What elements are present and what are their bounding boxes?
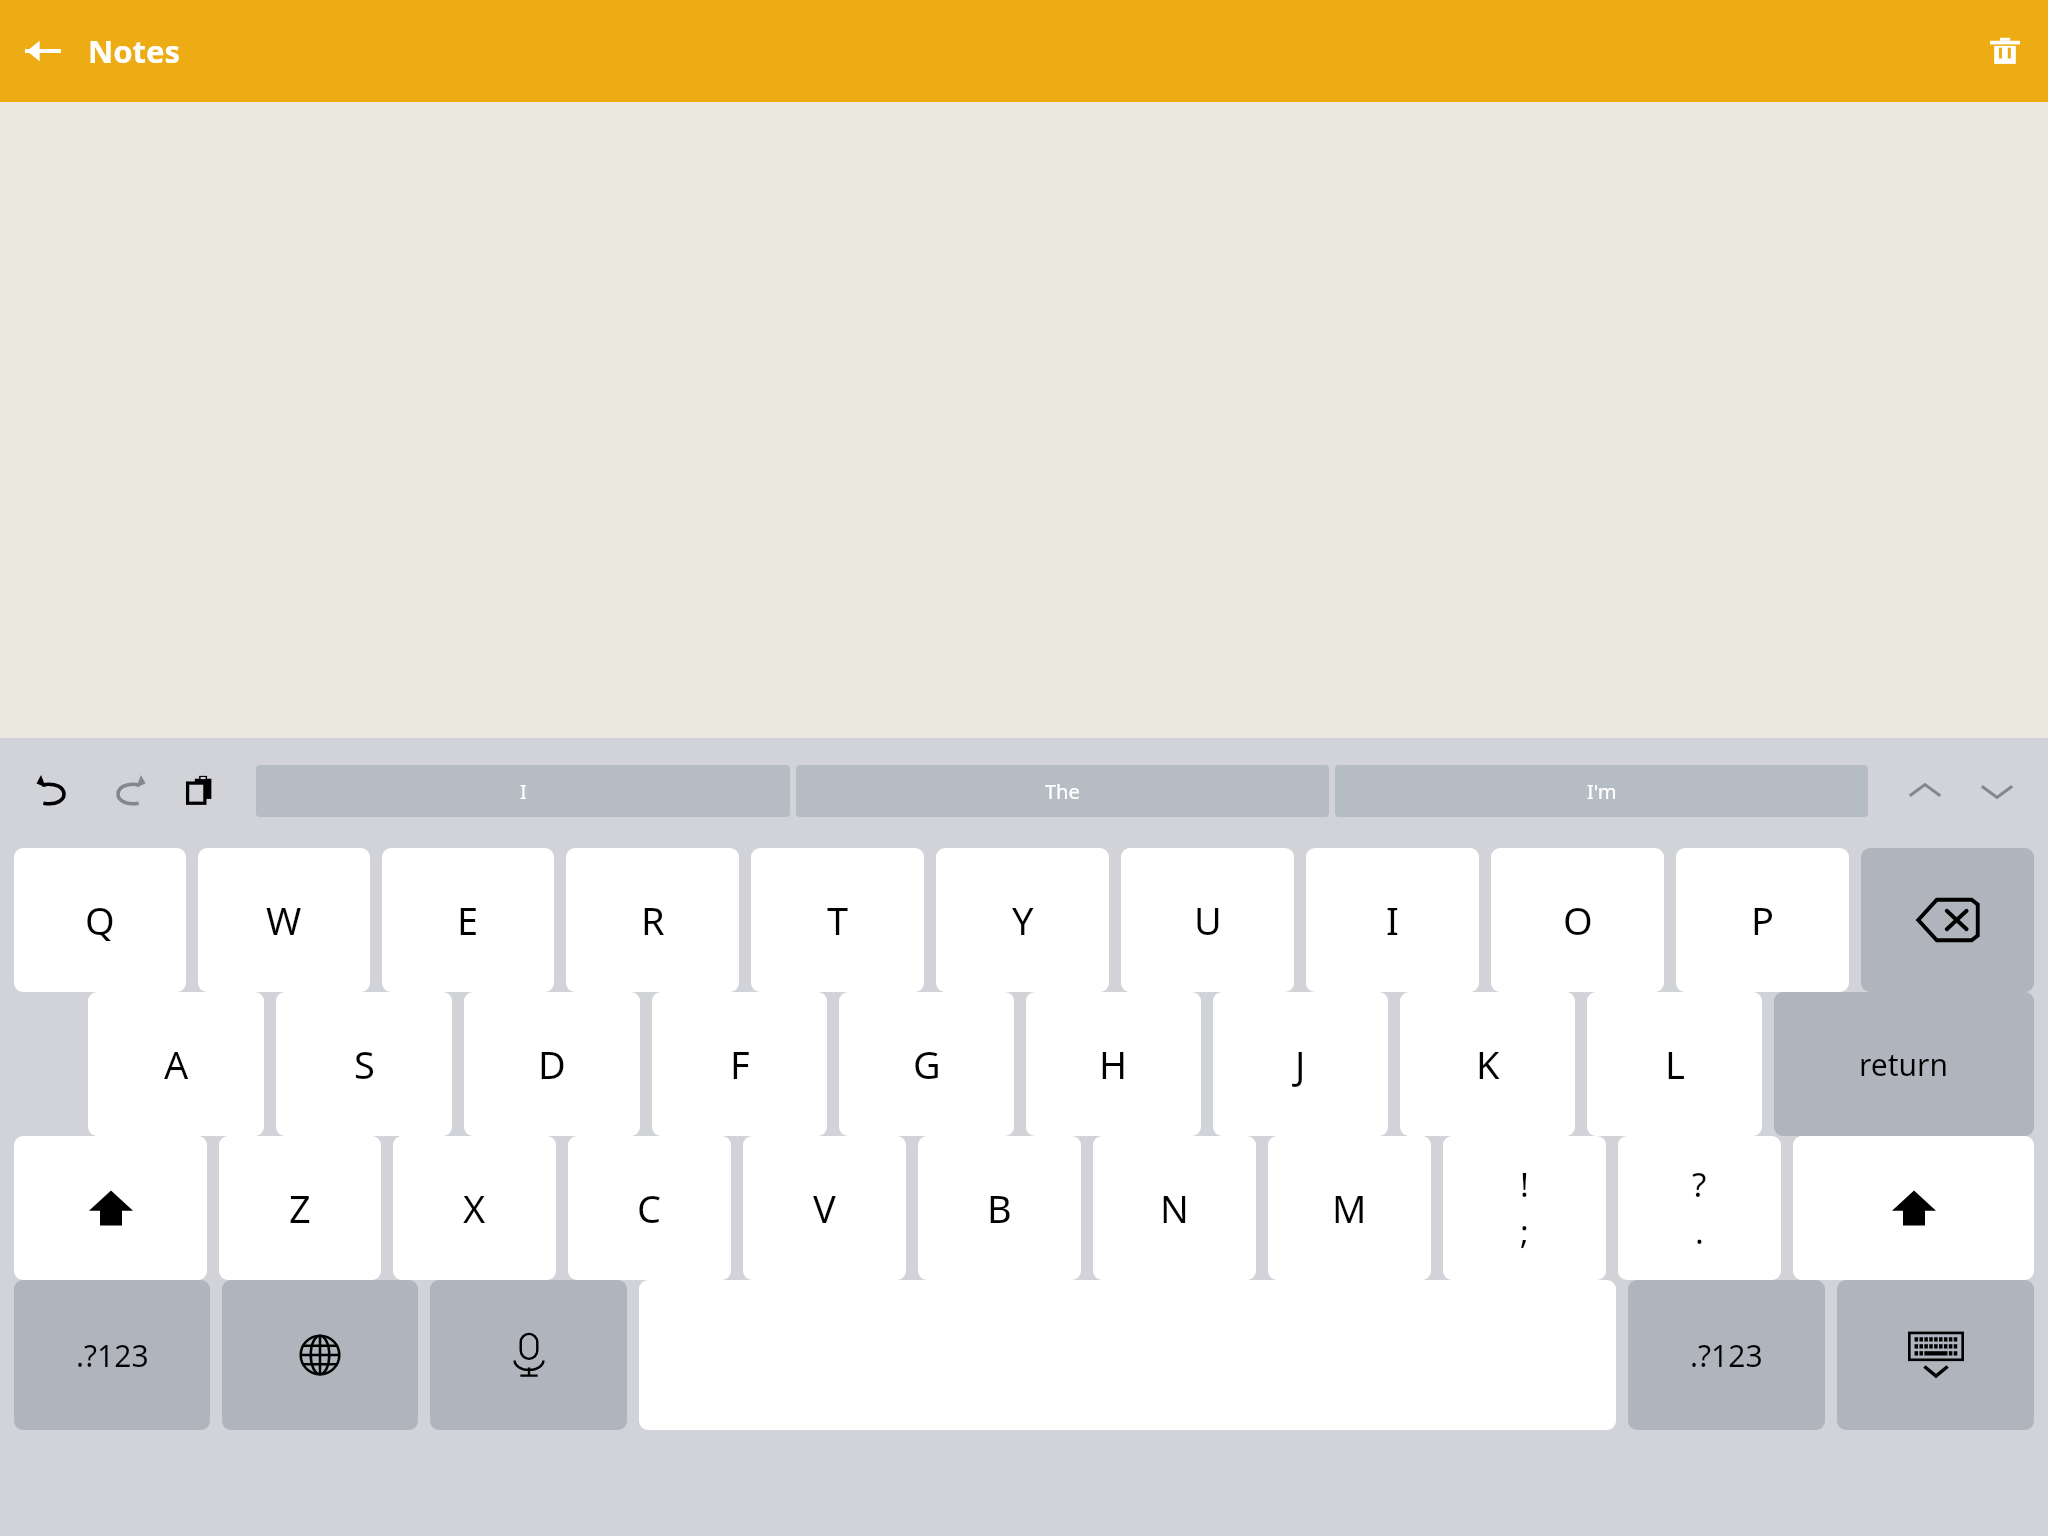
staticText: A <box>164 1038 189 1090</box>
staticText: E <box>457 894 479 946</box>
button[interactable]: The <box>796 765 1329 817</box>
button[interactable]: ? <box>1618 1136 1781 1280</box>
button[interactable]: Hide keyboard <box>1837 1280 2034 1430</box>
button[interactable]: B <box>918 1136 1081 1280</box>
button[interactable]: Undo <box>24 761 84 821</box>
staticText: V <box>813 1182 836 1234</box>
staticText: K <box>1476 1038 1500 1090</box>
staticText: W <box>266 894 302 946</box>
button[interactable]: ! <box>1443 1136 1606 1280</box>
button[interactable]: Q <box>14 848 186 992</box>
button[interactable]: G <box>839 992 1014 1136</box>
button[interactable]: R <box>566 848 739 992</box>
button[interactable]: I'm <box>1335 765 1868 817</box>
button[interactable]: H <box>1026 992 1201 1136</box>
button[interactable]: Backspace <box>1861 848 2034 992</box>
button[interactable]: T <box>751 848 924 992</box>
staticText: O <box>1563 894 1593 946</box>
button[interactable]: L <box>1587 992 1762 1136</box>
staticText: I <box>520 778 527 805</box>
button[interactable]: Shift <box>14 1136 207 1280</box>
button[interactable]: .?123 <box>14 1280 210 1430</box>
button[interactable]: .?123 <box>1628 1280 1825 1430</box>
staticText: G <box>913 1038 941 1090</box>
staticText: T <box>827 894 849 946</box>
button[interactable]: K <box>1400 992 1575 1136</box>
staticText: ! <box>1520 1162 1529 1207</box>
button[interactable]: W <box>198 848 370 992</box>
staticText: L <box>1665 1038 1685 1090</box>
staticText: return <box>1859 1044 1949 1085</box>
button[interactable]: Delete note <box>1976 22 2034 80</box>
staticText: I <box>1386 894 1399 946</box>
button[interactable]: N <box>1093 1136 1256 1280</box>
staticText: Q <box>85 894 115 946</box>
staticText: ? <box>1692 1162 1707 1207</box>
button[interactable]: U <box>1121 848 1294 992</box>
button[interactable]: Y <box>936 848 1109 992</box>
staticText: . <box>1695 1209 1704 1254</box>
button[interactable]: O <box>1491 848 1664 992</box>
staticText: The <box>1045 778 1080 805</box>
staticText: .?123 <box>1690 1335 1763 1376</box>
staticText: R <box>641 894 665 946</box>
button[interactable]: F <box>652 992 827 1136</box>
staticText: P <box>1751 894 1774 946</box>
button[interactable]: A <box>88 992 264 1136</box>
button[interactable]: V <box>743 1136 906 1280</box>
staticText: M <box>1332 1182 1367 1234</box>
button[interactable]: I <box>1306 848 1479 992</box>
button[interactable]: P <box>1676 848 1849 992</box>
staticText: ; <box>1520 1209 1529 1254</box>
staticText: N <box>1160 1182 1189 1234</box>
button[interactable]: C <box>568 1136 731 1280</box>
staticText: H <box>1099 1038 1128 1090</box>
button[interactable]: S <box>276 992 452 1136</box>
button[interactable]: Z <box>219 1136 381 1280</box>
button[interactable]: Redo <box>98 761 158 821</box>
staticText: F <box>730 1038 750 1090</box>
staticText: J <box>1295 1038 1306 1090</box>
button[interactable]: J <box>1213 992 1388 1136</box>
staticText: X <box>463 1182 486 1234</box>
button[interactable]: X <box>393 1136 556 1280</box>
staticText: B <box>987 1182 1012 1234</box>
staticText: D <box>538 1038 566 1090</box>
button[interactable]: Previous <box>1894 760 1956 822</box>
button[interactable]: Voice input <box>430 1280 627 1430</box>
staticText: Z <box>289 1182 311 1234</box>
button[interactable]: Change keyboard language <box>222 1280 418 1430</box>
button[interactable]: M <box>1268 1136 1431 1280</box>
staticText: Y <box>1012 894 1034 946</box>
button[interactable]: Next <box>1966 760 2028 822</box>
button[interactable]: Shift <box>1793 1136 2034 1280</box>
staticText: C <box>637 1182 662 1234</box>
button[interactable]: D <box>464 992 640 1136</box>
staticText: Notes <box>88 30 181 72</box>
staticText: U <box>1194 894 1222 946</box>
button[interactable]: Paste <box>172 761 232 821</box>
button[interactable]: Back <box>14 22 72 80</box>
staticText: I'm <box>1587 778 1617 805</box>
button[interactable]: return <box>1774 992 2034 1136</box>
staticText: S <box>354 1038 375 1090</box>
button[interactable]: E <box>382 848 554 992</box>
staticText: .?123 <box>76 1335 149 1376</box>
